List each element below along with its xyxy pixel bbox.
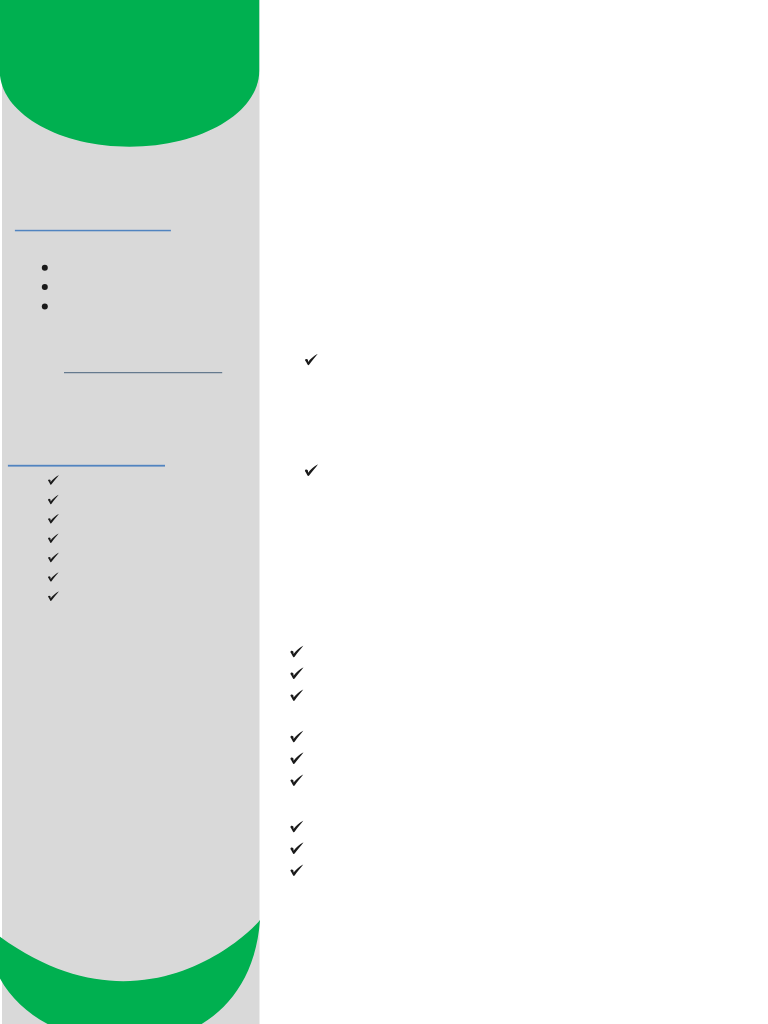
button[interactable]: Contact section bbox=[64, 348, 222, 374]
button[interactable]: Time management bbox=[45, 550, 62, 566]
button[interactable]: Achievement 3 bbox=[287, 861, 306, 879]
button[interactable]: Creativity bbox=[45, 569, 62, 585]
button[interactable]: Project 2 bbox=[287, 664, 306, 682]
button[interactable]: Responsibility 1 bbox=[287, 728, 306, 746]
button[interactable]: Education highlight bbox=[302, 461, 321, 479]
button[interactable]: Achievement 1 bbox=[287, 818, 306, 836]
button[interactable]: Communication bbox=[45, 472, 62, 488]
button[interactable]: Team work bbox=[45, 492, 62, 508]
button[interactable]: Skills section bbox=[8, 441, 165, 467]
button[interactable]: Leadership bbox=[45, 530, 62, 546]
button[interactable]: Responsibility 3 bbox=[287, 771, 306, 789]
button[interactable]: Achievement 2 bbox=[287, 839, 306, 857]
button[interactable]: Experience highlight bbox=[302, 351, 321, 369]
button[interactable]: Project 3 bbox=[287, 686, 306, 704]
other: Resume document page bbox=[0, 0, 768, 1024]
button[interactable]: Adaptability bbox=[45, 588, 62, 604]
button[interactable]: Project 1 bbox=[287, 643, 306, 661]
button[interactable]: Problem solving bbox=[45, 511, 62, 527]
button[interactable]: Responsibility 2 bbox=[287, 749, 306, 767]
button[interactable]: Profile section bbox=[15, 206, 171, 232]
